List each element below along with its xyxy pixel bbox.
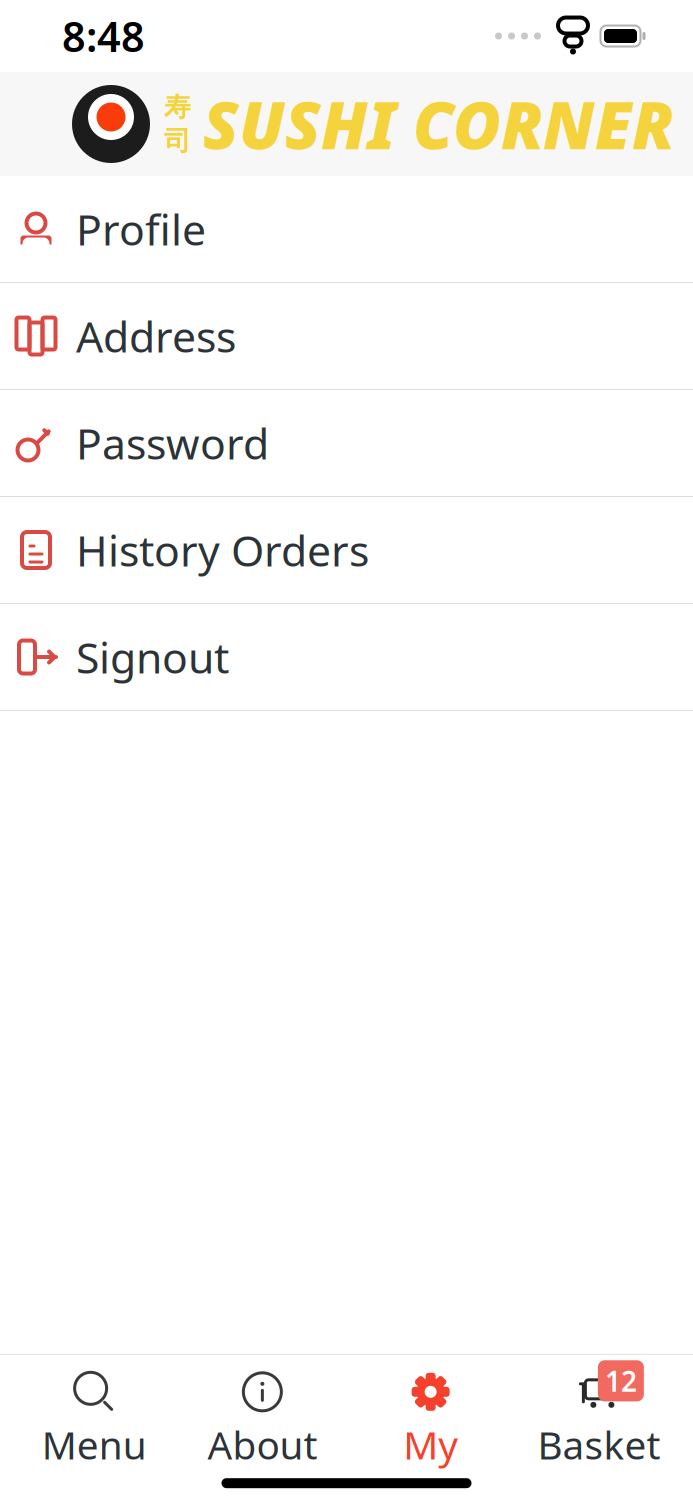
staticText: 12 — [605, 1362, 637, 1399]
button[interactable]: Address — [0, 283, 693, 390]
staticText: SUSHI CORNER — [203, 81, 674, 167]
button[interactable]: My — [346, 1369, 515, 1470]
button[interactable]: About — [178, 1369, 346, 1470]
staticText: 司 — [164, 124, 191, 157]
staticText: History Orders — [76, 522, 369, 578]
staticText: Address — [76, 308, 236, 364]
staticText: 8:48 — [62, 9, 145, 63]
staticText: My — [403, 1419, 458, 1470]
staticText: Signout — [76, 629, 229, 685]
button[interactable]: Password — [0, 390, 693, 497]
staticText: Basket — [537, 1419, 660, 1470]
staticText: 寿 — [164, 91, 191, 123]
button[interactable]: Profile — [0, 176, 693, 283]
staticText: Profile — [76, 201, 206, 257]
button[interactable]: History Orders — [0, 497, 693, 604]
staticText: About — [207, 1419, 317, 1470]
button[interactable]: Menu — [10, 1369, 178, 1470]
staticText: Password — [76, 415, 269, 471]
button[interactable]: Signout — [0, 604, 693, 711]
button[interactable]: 12 — [515, 1369, 683, 1470]
staticText: Menu — [42, 1419, 147, 1470]
